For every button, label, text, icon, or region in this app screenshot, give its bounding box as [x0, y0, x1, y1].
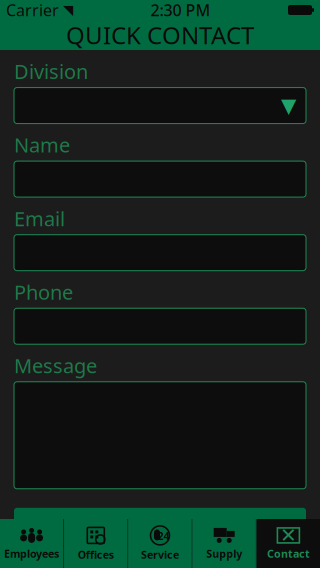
staticText: Phone	[14, 279, 73, 305]
button[interactable]	[14, 382, 306, 489]
button[interactable]: 24	[128, 519, 192, 568]
button[interactable]: Employees	[0, 519, 63, 568]
staticText: QUICK CONTACT	[66, 19, 254, 51]
button[interactable]: SUBMIT	[14, 508, 306, 547]
button[interactable]	[14, 308, 306, 344]
staticText: 24	[157, 529, 169, 543]
staticText: SUBMIT	[112, 510, 207, 544]
button[interactable]: ✕	[257, 519, 320, 568]
button[interactable]	[14, 235, 306, 271]
staticText: ◥	[63, 2, 73, 17]
button[interactable]: ▼	[14, 88, 306, 124]
staticText: Supply	[206, 546, 242, 561]
button[interactable]: Offices	[64, 519, 127, 568]
staticText: Message	[14, 352, 97, 379]
staticText: Email	[14, 205, 65, 232]
staticText: Contact	[267, 546, 310, 561]
staticText: 2:30 PM	[150, 0, 210, 21]
button[interactable]	[14, 161, 306, 197]
staticText: Employees	[4, 546, 59, 561]
staticText: Name	[14, 132, 70, 158]
staticText: Service	[141, 547, 179, 562]
staticText: ▼	[281, 94, 296, 117]
staticText: Offices	[78, 547, 114, 562]
button[interactable]: Supply	[193, 519, 256, 568]
staticText: Carrier	[6, 0, 59, 21]
staticText: ✕	[280, 524, 297, 547]
staticText: Division	[14, 58, 88, 85]
